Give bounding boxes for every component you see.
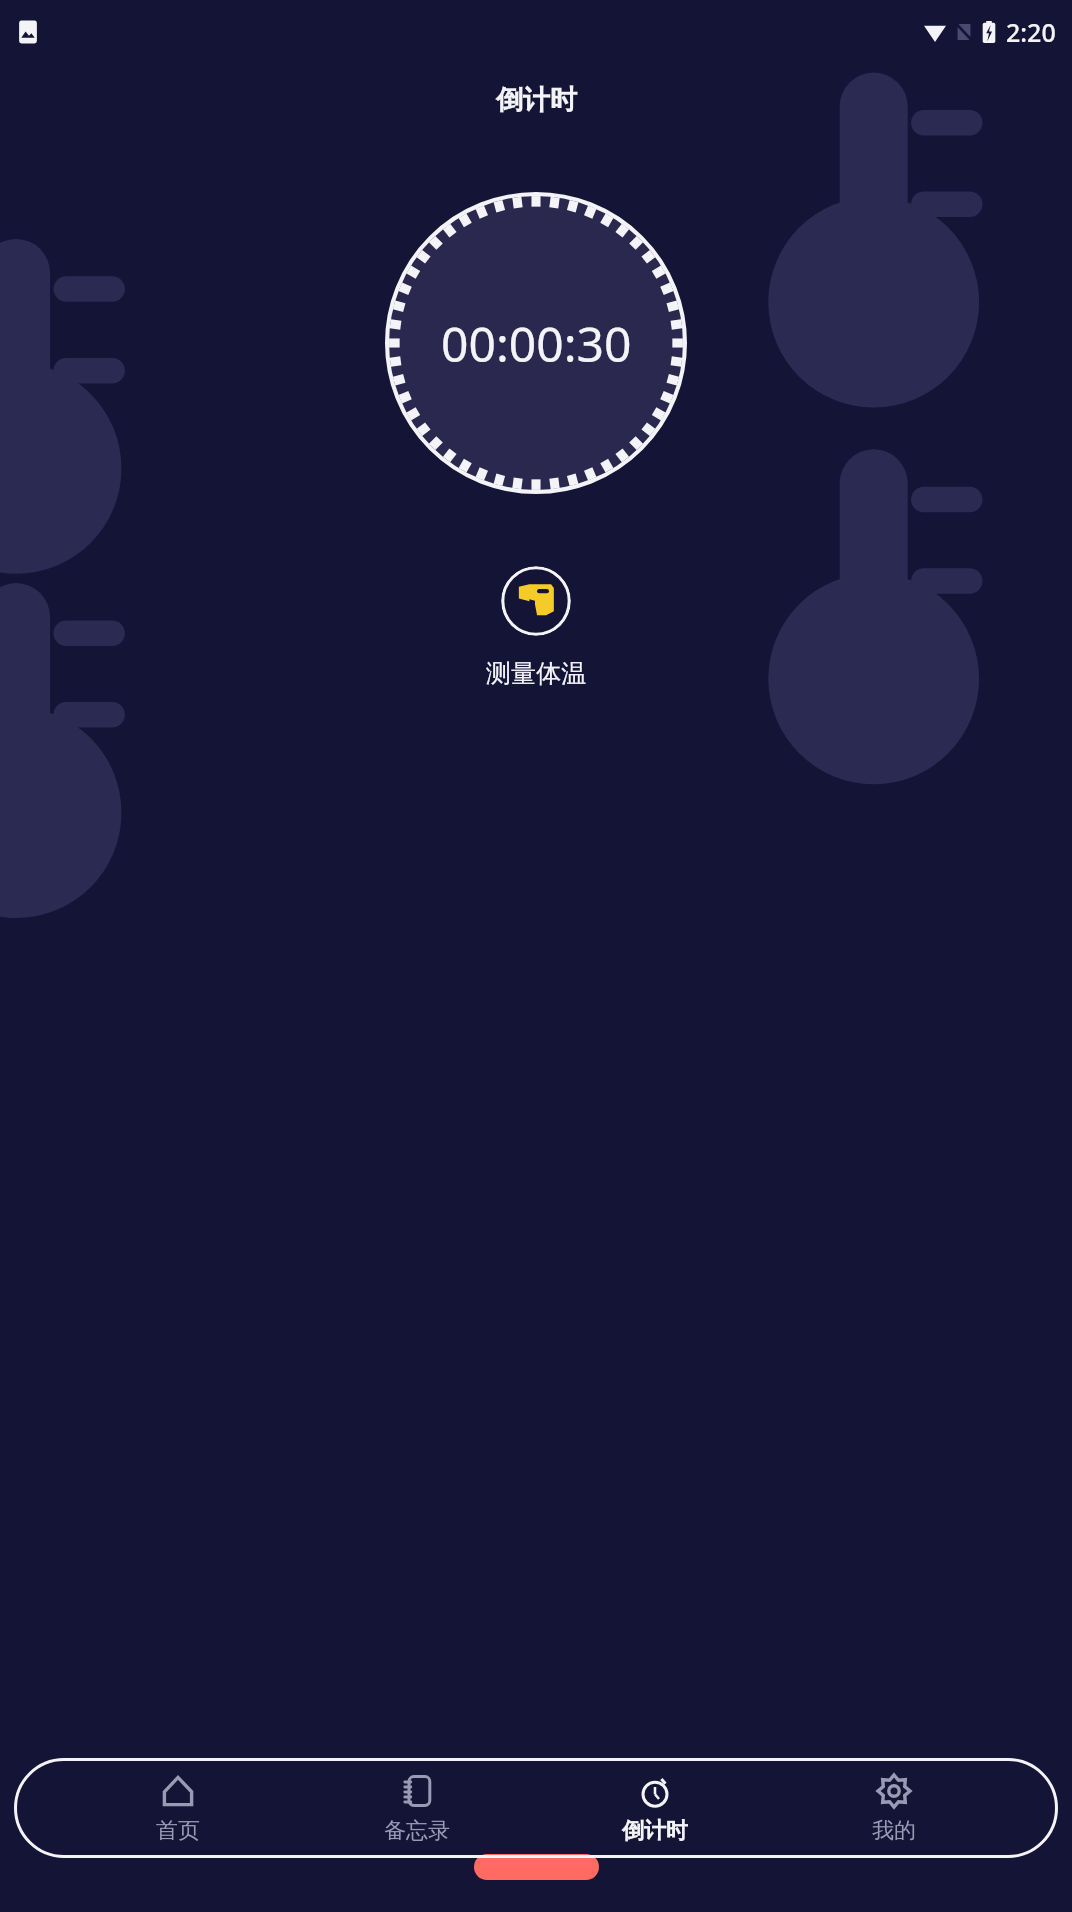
staticText: 备忘录 [384,1817,450,1845]
staticText: 测量体温 [486,658,586,689]
button[interactable]: 备忘录 [342,1765,492,1851]
button[interactable]: 首页 [103,1765,253,1851]
button[interactable]: 倒计时 [580,1765,730,1851]
staticText: 2:20 [1006,15,1056,49]
button[interactable]: 测量体温 [501,566,571,636]
staticText: 我的 [872,1817,916,1845]
staticText: 倒计时 [622,1817,688,1845]
staticText: 首页 [156,1817,200,1845]
button[interactable]: 我的 [819,1765,969,1851]
staticText: 倒计时 [496,83,577,117]
staticText: 00:00:30 [441,311,632,376]
